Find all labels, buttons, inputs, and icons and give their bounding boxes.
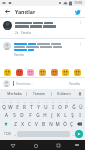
button[interactable]: Yanıtla bbox=[0, 39, 85, 60]
button[interactable]: C bbox=[26, 119, 33, 128]
staticText: P bbox=[65, 104, 68, 110]
button[interactable]: Ç bbox=[68, 119, 75, 128]
button[interactable]: 4 bbox=[21, 100, 28, 110]
button[interactable]: 8 bbox=[49, 100, 56, 110]
staticText: 6 bbox=[38, 101, 40, 104]
button[interactable]: Kullanıcı bbox=[52, 89, 76, 98]
staticText: Yanıtla bbox=[14, 53, 24, 57]
button[interactable]: Ü bbox=[77, 100, 84, 110]
button[interactable]: ?123 bbox=[2, 128, 12, 139]
staticText: Merhaba bbox=[7, 91, 22, 96]
staticText: 1 bbox=[3, 101, 5, 104]
button[interactable]: Emoji bbox=[27, 69, 34, 76]
button[interactable]: I bbox=[76, 110, 83, 119]
staticText: O bbox=[58, 104, 62, 110]
button[interactable]: 9 bbox=[56, 100, 63, 110]
button[interactable]: 2s bbox=[0, 18, 85, 38]
button[interactable]: Emoji bbox=[39, 69, 46, 76]
staticText: 2 bbox=[10, 101, 12, 104]
staticText: 0 bbox=[66, 101, 68, 104]
staticText: Ş bbox=[71, 112, 74, 118]
button[interactable]: J bbox=[48, 110, 55, 119]
staticText: W bbox=[8, 104, 13, 110]
button[interactable]: 2 bbox=[7, 100, 14, 110]
button[interactable]: Comma bbox=[12, 128, 17, 139]
staticText: ?123 bbox=[4, 132, 11, 136]
staticText: I bbox=[52, 104, 54, 110]
button[interactable]: Emoji bbox=[74, 69, 81, 76]
button[interactable]: Z bbox=[11, 119, 19, 128]
button[interactable]: Shift bbox=[1, 119, 11, 128]
staticText: 3 bbox=[17, 101, 19, 104]
button[interactable]: Emoji bbox=[62, 69, 69, 76]
button[interactable]: Ş bbox=[69, 110, 76, 119]
button[interactable]: 7 bbox=[42, 100, 49, 110]
staticText: C bbox=[28, 121, 31, 127]
staticText: 8 bbox=[52, 101, 54, 104]
button[interactable]: S bbox=[10, 110, 18, 119]
button[interactable]: X bbox=[19, 119, 26, 128]
button[interactable]: Keyboard bbox=[73, 141, 81, 149]
button[interactable]: Tamam bbox=[27, 89, 51, 98]
staticText: R bbox=[23, 104, 26, 110]
staticText: 7 bbox=[45, 101, 47, 104]
button[interactable]: H bbox=[41, 110, 48, 119]
staticText: U bbox=[44, 104, 48, 110]
staticText: Yanıtla bbox=[69, 81, 80, 86]
button[interactable]: Send bbox=[75, 130, 83, 138]
staticText: D bbox=[20, 112, 24, 118]
button[interactable]: Yanıtla bbox=[67, 80, 82, 87]
staticText: A bbox=[5, 112, 8, 118]
staticText: X bbox=[21, 121, 24, 127]
button[interactable]: Voice input bbox=[76, 89, 83, 98]
button[interactable]: Emoji bbox=[51, 69, 58, 76]
button[interactable]: Merhaba bbox=[2, 89, 26, 98]
button[interactable]: 0 bbox=[63, 100, 70, 110]
staticText: Yanıtınızı... bbox=[16, 81, 33, 86]
button[interactable]: Back bbox=[8, 141, 17, 150]
button[interactable]: Emoji bbox=[4, 69, 11, 76]
button[interactable]: B bbox=[40, 119, 47, 128]
staticText: Ö bbox=[63, 121, 67, 127]
staticText: M bbox=[55, 121, 60, 127]
staticText: Kullanıcı bbox=[57, 91, 71, 96]
button[interactable]: 3 bbox=[14, 100, 21, 110]
staticText: N bbox=[49, 121, 53, 127]
button[interactable]: D bbox=[18, 110, 26, 119]
button[interactable]: Period bbox=[70, 128, 75, 139]
staticText: Ğ bbox=[72, 104, 76, 110]
button[interactable]: Backspace bbox=[75, 119, 84, 128]
staticText: Ü bbox=[79, 104, 83, 110]
staticText: K bbox=[57, 112, 60, 118]
button[interactable]: 5 bbox=[28, 100, 35, 110]
button[interactable]: Ö bbox=[61, 119, 68, 128]
button[interactable]: Twitter bbox=[73, 7, 82, 16]
button[interactable]: Home bbox=[31, 141, 40, 150]
button[interactable]: A bbox=[2, 110, 10, 119]
button[interactable]: V bbox=[33, 119, 40, 128]
button[interactable]: N bbox=[47, 119, 54, 128]
staticText: F bbox=[29, 112, 32, 118]
button[interactable]: 6 bbox=[35, 100, 42, 110]
staticText: 2s bbox=[15, 31, 19, 35]
staticText: E bbox=[16, 104, 19, 110]
button[interactable]: 1 bbox=[1, 100, 7, 110]
button[interactable]: Recents bbox=[54, 141, 63, 150]
staticText: Tamam bbox=[33, 91, 45, 96]
staticText: 5 bbox=[31, 101, 33, 104]
button[interactable]: K bbox=[55, 110, 62, 119]
button[interactable]: Emoji bbox=[16, 69, 23, 76]
staticText: H bbox=[43, 112, 47, 118]
button[interactable]: Ğ bbox=[70, 100, 77, 110]
button[interactable]: M bbox=[54, 119, 61, 128]
button[interactable]: G bbox=[34, 110, 41, 119]
staticText: 10:58 bbox=[74, 1, 83, 5]
button[interactable]: Back bbox=[3, 7, 12, 16]
staticText: G bbox=[36, 112, 40, 118]
staticText: Q bbox=[2, 104, 6, 110]
button[interactable]: Yanıtınızı... bbox=[13, 81, 67, 86]
staticText: S bbox=[13, 112, 16, 118]
button[interactable]: L bbox=[62, 110, 69, 119]
button[interactable]: F bbox=[26, 110, 34, 119]
